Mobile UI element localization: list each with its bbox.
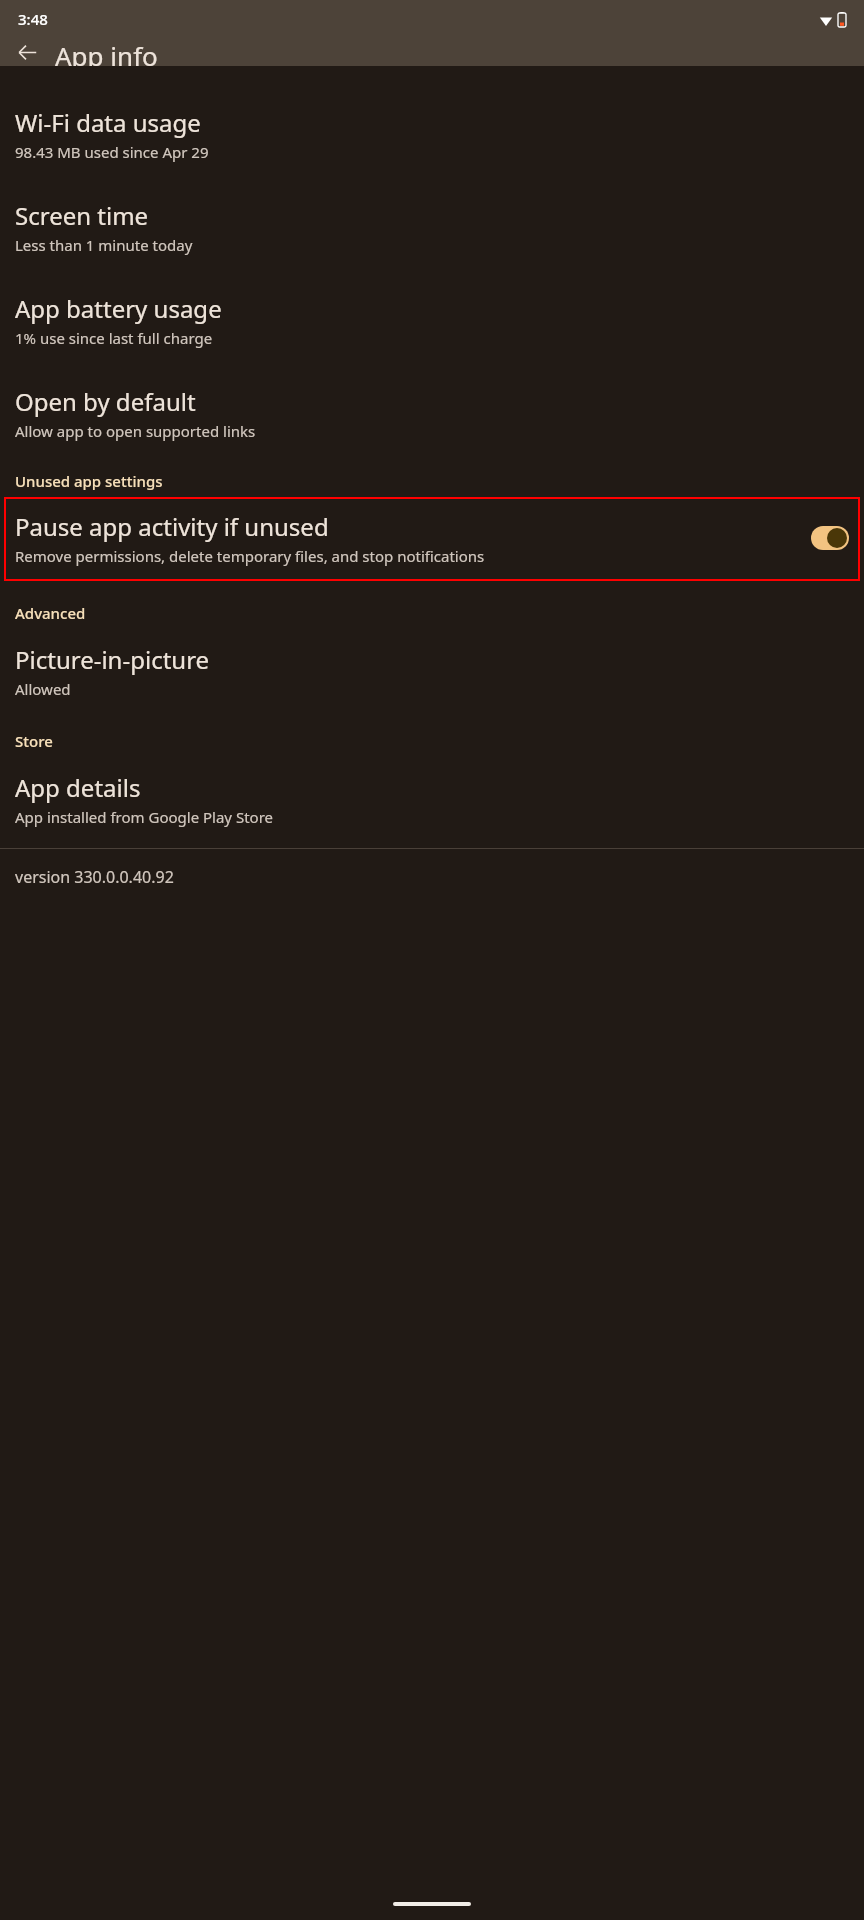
staticText: 3:48 [18, 9, 48, 29]
staticText: Remove permissions, delete temporary fil… [15, 546, 485, 566]
staticText: Allowed [15, 679, 71, 699]
staticText: App battery usage [15, 292, 222, 325]
button[interactable]: App details [0, 761, 864, 837]
staticText: Pause app activity if unused [15, 510, 329, 543]
staticText: Wi-Fi data usage [15, 106, 201, 139]
staticText: Allow app to open supported links [15, 421, 256, 441]
button[interactable]: Pause app activity if unused toggle [811, 526, 849, 550]
staticText: App installed from Google Play Store [15, 807, 273, 827]
staticText: Open by default [15, 385, 196, 418]
staticText: 1% use since last full charge [15, 328, 213, 348]
button[interactable]: Pause app activity if unused [4, 497, 860, 581]
staticText: Store [15, 731, 53, 751]
button[interactable]: Screen time [0, 189, 864, 265]
button[interactable]: Open by default [0, 375, 864, 451]
staticText: Screen time [15, 199, 149, 232]
staticText: App details [15, 771, 141, 804]
staticText: Advanced [15, 603, 86, 623]
button[interactable]: Back [7, 38, 47, 66]
staticText: Unused app settings [15, 471, 163, 491]
staticText: Less than 1 minute today [15, 235, 193, 255]
staticText: Picture-in-picture [15, 643, 210, 676]
staticText: version 330.0.0.40.92 [15, 866, 174, 888]
staticText: 98.43 MB used since Apr 29 [15, 142, 209, 162]
button[interactable]: Picture-in-picture [0, 633, 864, 709]
staticText: App info [55, 38, 158, 66]
button[interactable]: Wi-Fi data usage [0, 96, 864, 172]
button[interactable]: App battery usage [0, 282, 864, 358]
